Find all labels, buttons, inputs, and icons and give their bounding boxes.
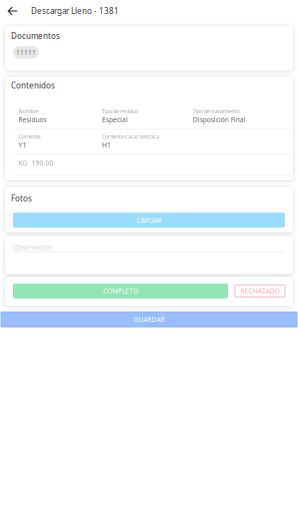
staticText: GUARDAR bbox=[133, 315, 164, 324]
button[interactable]: Back bbox=[0, 0, 24, 22]
staticText: Tipo de tratamiento bbox=[193, 108, 240, 115]
staticText: Corriente característica bbox=[102, 133, 159, 140]
staticText: Observación bbox=[13, 243, 52, 252]
staticText: Nombre bbox=[18, 108, 38, 115]
staticText: Contenidos bbox=[11, 80, 55, 91]
staticText: Y1 bbox=[18, 140, 26, 149]
staticText: Fotos bbox=[11, 193, 32, 204]
staticText: Residuos bbox=[18, 115, 46, 124]
button[interactable]: RECHAZADO bbox=[235, 285, 285, 297]
staticText: Especial bbox=[102, 115, 128, 124]
staticText: 11111 bbox=[16, 48, 36, 57]
staticText: CARGAR bbox=[136, 216, 161, 225]
staticText: Disposición Final bbox=[193, 115, 246, 124]
staticText: Documentos bbox=[11, 30, 60, 41]
staticText: Tipo de residuo bbox=[102, 108, 138, 115]
button[interactable]: COMPLETO bbox=[13, 283, 228, 298]
button[interactable]: GUARDAR bbox=[1, 312, 297, 327]
button[interactable]: CARGAR bbox=[13, 213, 285, 228]
staticText: Descargar Lleno - 1381 bbox=[31, 6, 119, 16]
staticText: COMPLETO bbox=[103, 287, 138, 295]
staticText: Corriente bbox=[18, 133, 40, 140]
staticText: RECHAZADO bbox=[240, 287, 279, 295]
staticText: KG 190.00 bbox=[18, 158, 53, 167]
staticText: H1 bbox=[102, 140, 111, 149]
